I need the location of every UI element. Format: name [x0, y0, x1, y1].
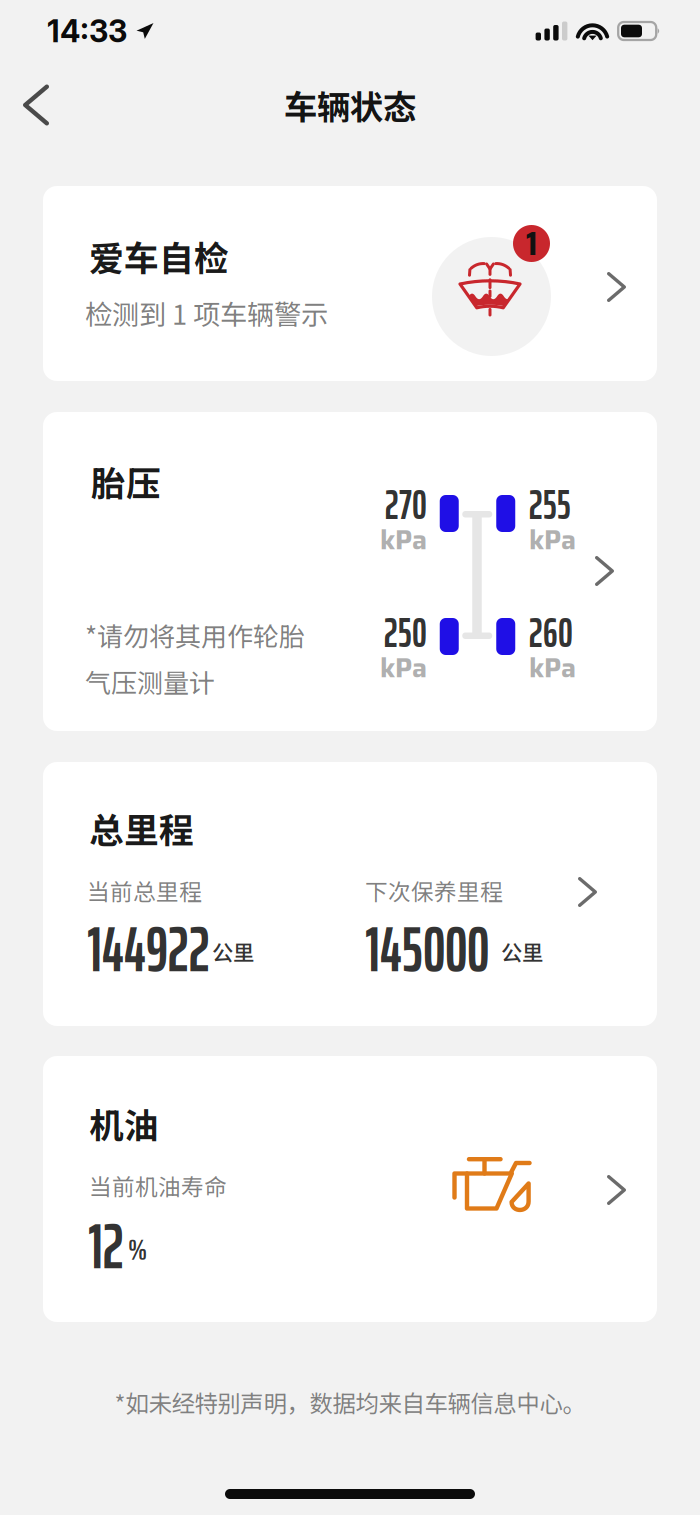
staticText: 下次保养里程 — [365, 874, 503, 907]
staticText: 270 — [385, 472, 427, 537]
staticText: 检测到 1 项车辆警示 — [85, 293, 328, 333]
staticText: *如未经特别声明，数据均来自车辆信息中心。 — [114, 1385, 585, 1419]
button[interactable]: 机油 — [43, 1056, 657, 1322]
staticText: 260 — [529, 600, 573, 665]
staticText: 255 — [529, 472, 571, 537]
staticText: 144922 — [87, 900, 210, 999]
staticText: 总里程 — [89, 803, 194, 853]
staticText: 车辆状态 — [284, 81, 416, 129]
staticText: 公里 — [501, 936, 543, 967]
button[interactable]: 返回 — [0, 69, 72, 141]
staticText: 12 — [88, 1197, 124, 1296]
button[interactable]: 总里程 — [43, 762, 657, 1026]
staticText: 胎压 — [91, 456, 161, 506]
staticText: kPa — [529, 647, 576, 689]
staticText: *请勿将其用作轮胎 — [85, 616, 305, 654]
staticText: 145000 — [365, 900, 489, 999]
button[interactable]: 胎压 — [43, 412, 657, 731]
staticText: 气压测量计 — [85, 663, 215, 700]
staticText: kPa — [380, 647, 427, 689]
staticText: 爱车自检 — [89, 231, 229, 281]
staticText: 机油 — [89, 1098, 159, 1148]
staticText: 当前机油寿命 — [89, 1169, 227, 1202]
staticText: 当前总里程 — [87, 874, 202, 907]
staticText: kPa — [529, 519, 576, 561]
staticText: kPa — [380, 519, 427, 561]
staticText: 250 — [384, 600, 427, 665]
button[interactable]: 爱车自检 — [43, 186, 657, 381]
staticText: 公里 — [212, 936, 254, 967]
staticText: % — [128, 1228, 147, 1272]
staticText: 1 — [526, 217, 537, 270]
staticText: 14:33 — [47, 12, 127, 49]
